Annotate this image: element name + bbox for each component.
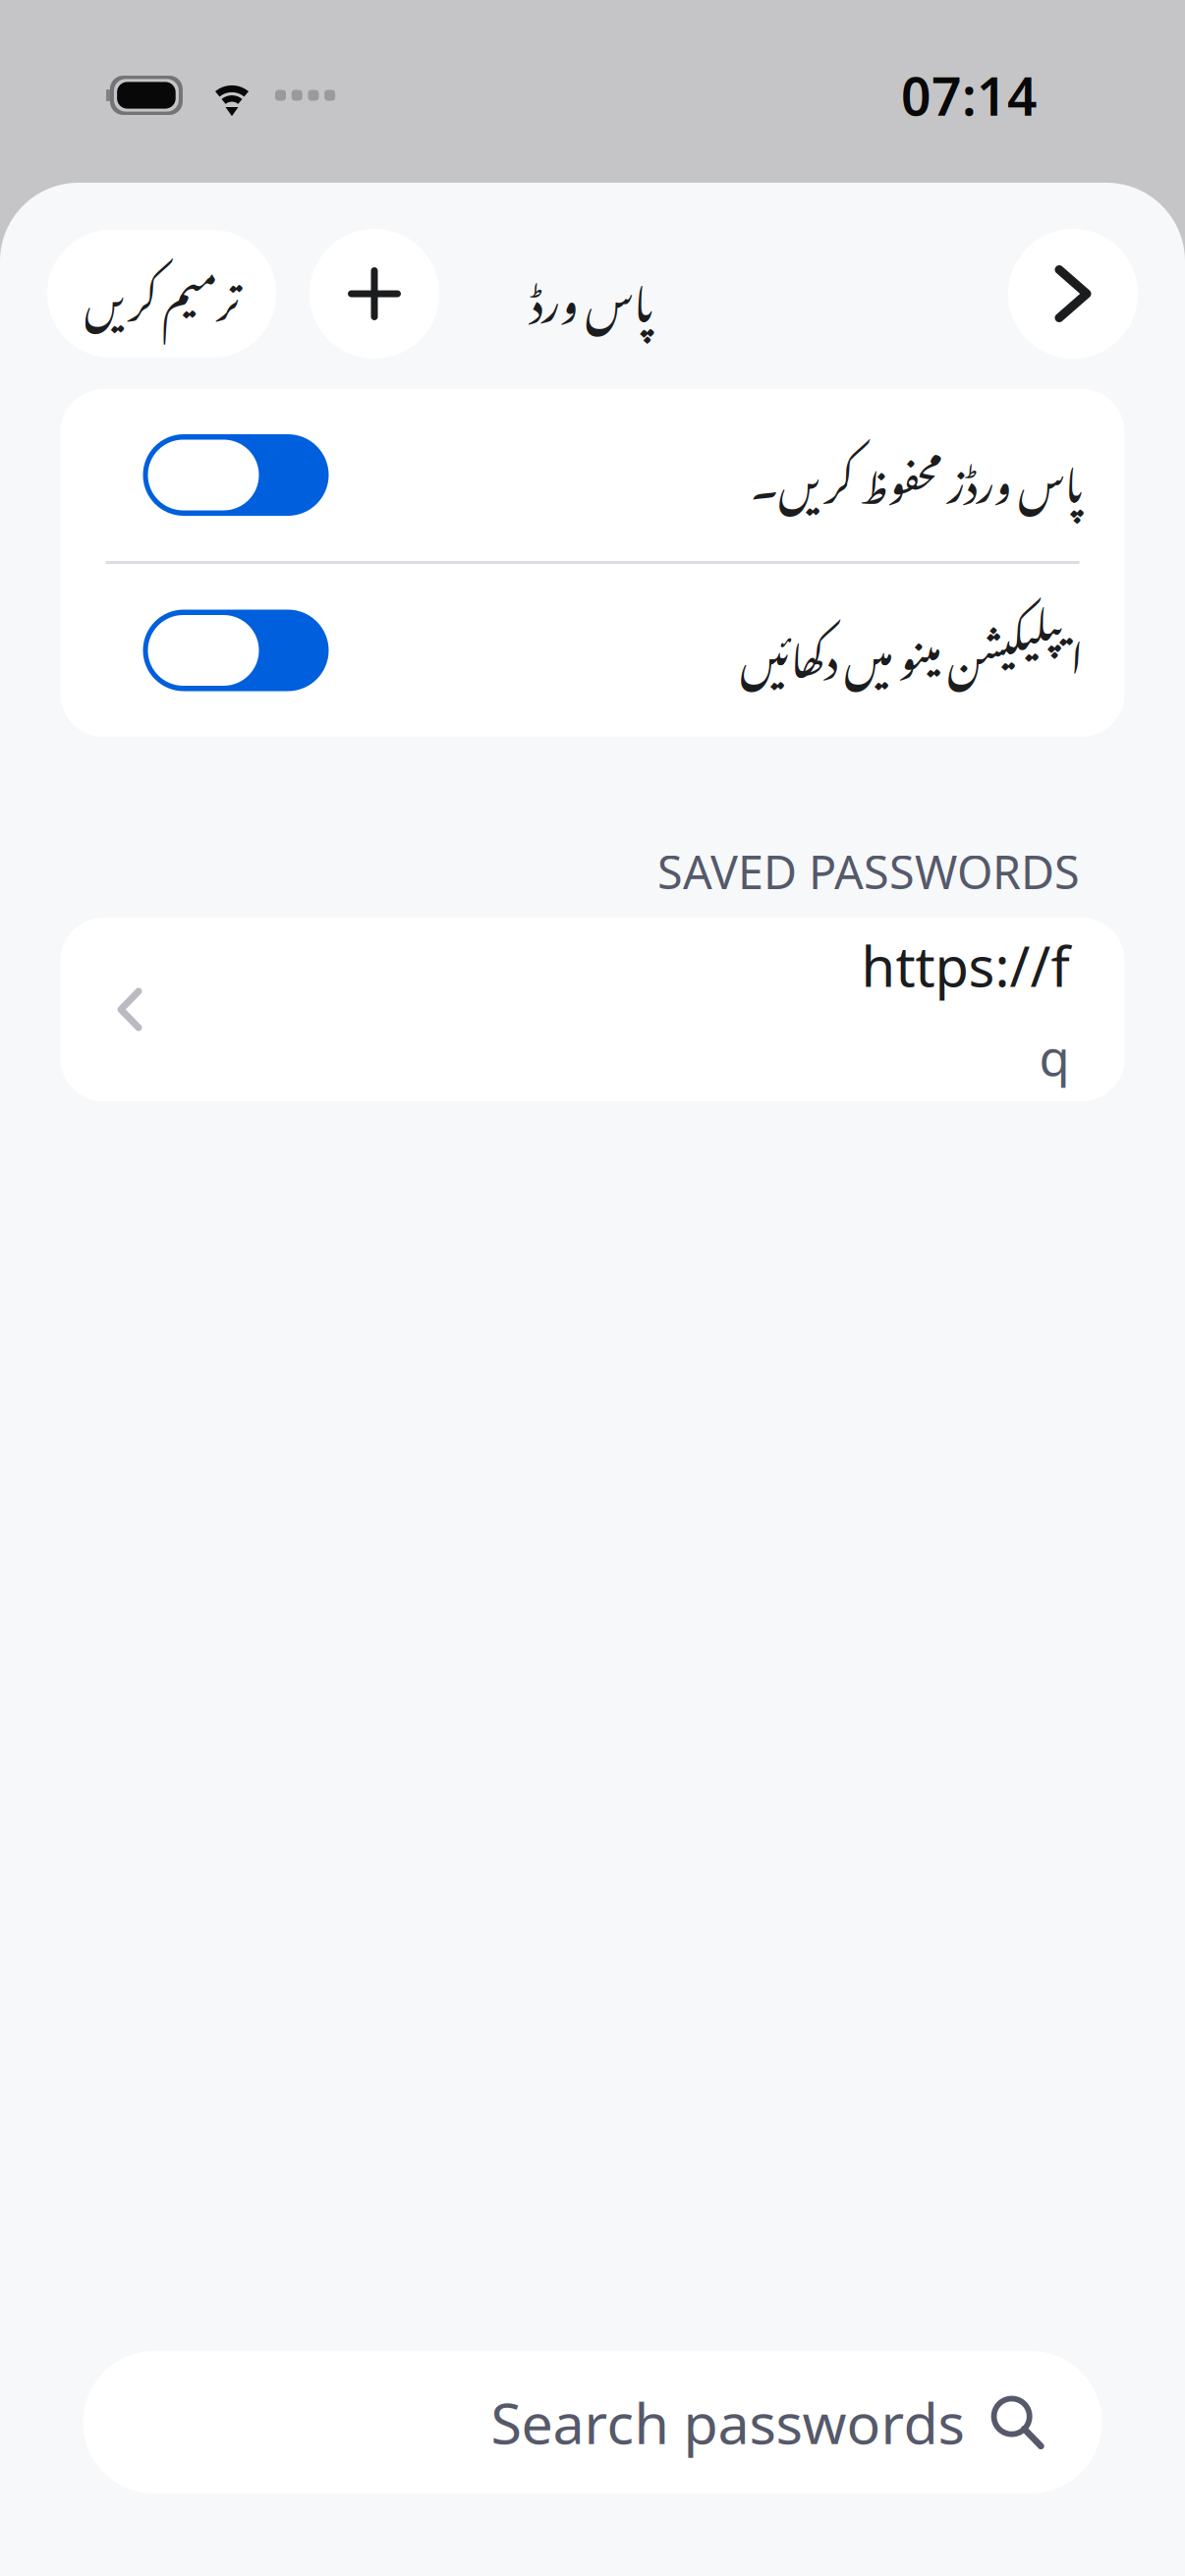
staticText: https://f <box>861 929 1070 1002</box>
staticText: Search passwords <box>491 2385 964 2460</box>
button[interactable]: پاس ورڈز محفوظ کریں۔ <box>60 389 1125 561</box>
staticText: 07:14 <box>901 61 1038 130</box>
button[interactable]: https://f <box>60 918 1125 1101</box>
button[interactable]: Search passwords <box>83 2351 1102 2493</box>
staticText: ترمیم کریں <box>84 243 240 344</box>
staticText: پاس ورڈز محفوظ کریں۔ <box>750 423 1083 527</box>
button[interactable]: ایپلیکیشن مینو میں دکھائیں <box>60 564 1125 737</box>
staticText: q <box>1039 1024 1070 1090</box>
button[interactable]: Add password <box>310 229 439 359</box>
staticText: SAVED PASSWORDS <box>657 841 1080 902</box>
button[interactable]: Back <box>1008 229 1138 359</box>
staticText: ایپلیکیشن مینو میں دکھائیں <box>739 598 1083 703</box>
staticText: پاس ورڈ <box>530 240 653 348</box>
button[interactable]: ترمیم کریں <box>47 230 276 358</box>
